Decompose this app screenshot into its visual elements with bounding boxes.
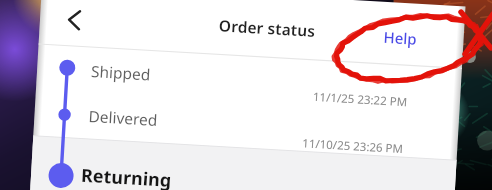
- staticText: 11/10/25 23:26 PM: [302, 135, 404, 157]
- button[interactable]: Back: [53, 0, 95, 41]
- staticText: Shipped: [90, 60, 152, 84]
- staticText: Order status: [218, 14, 316, 41]
- button[interactable]: Delivered: [33, 94, 459, 162]
- staticText: Returning: [80, 163, 173, 190]
- button[interactable]: Shipped: [36, 48, 462, 116]
- staticText: Delivered: [88, 105, 159, 130]
- staticText: 11/1/25 23:22 PM: [312, 89, 408, 110]
- staticText: Help: [383, 27, 418, 49]
- button[interactable]: Returning: [30, 160, 455, 190]
- button[interactable]: Help: [368, 17, 433, 58]
